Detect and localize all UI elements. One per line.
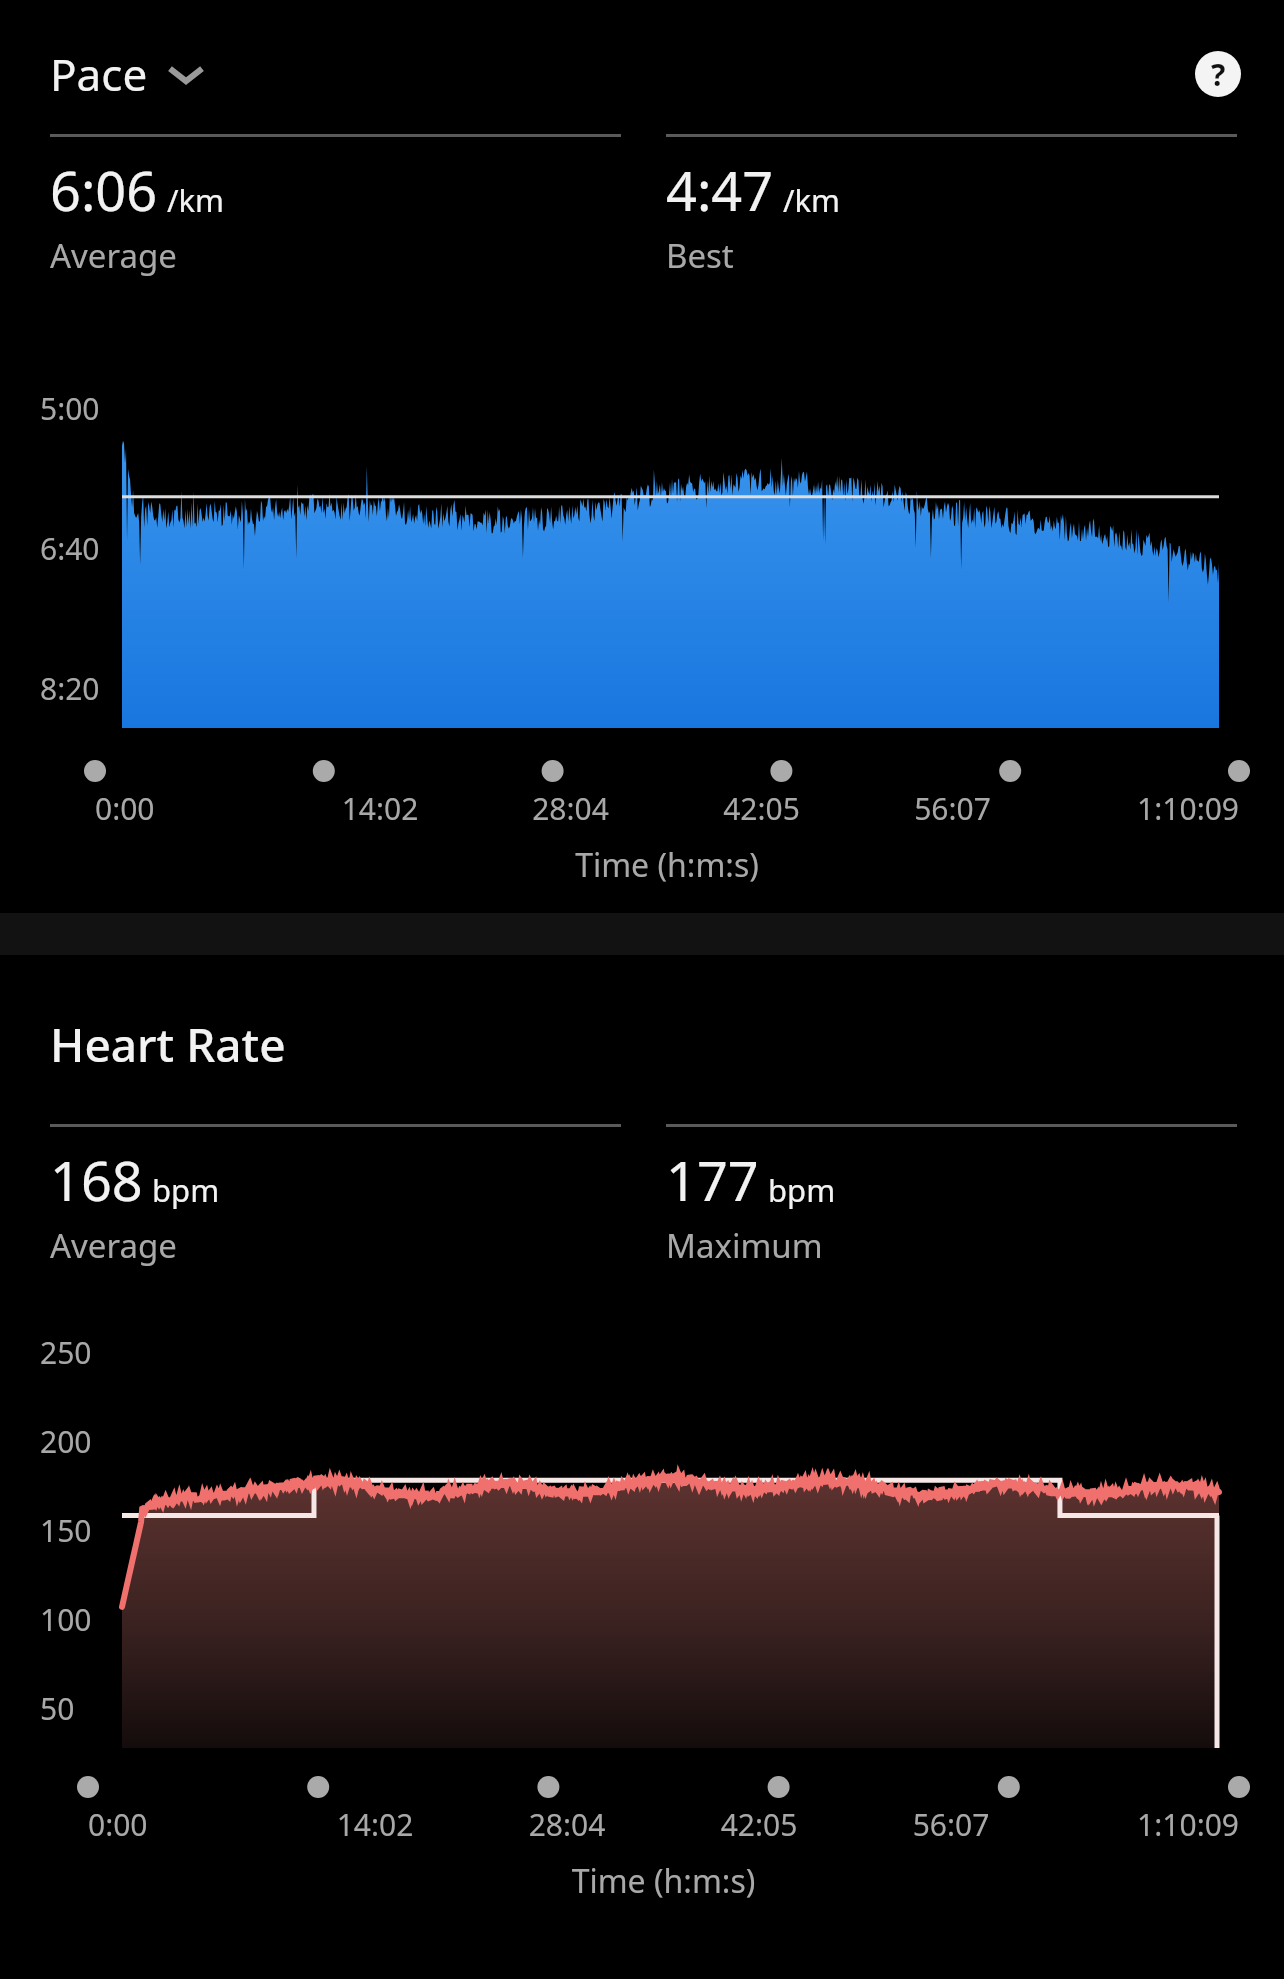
staticText: 250 bbox=[40, 1332, 92, 1373]
staticText: 42:05 bbox=[663, 1804, 855, 1845]
staticText: 42:05 bbox=[666, 788, 857, 829]
staticText: Average bbox=[50, 233, 177, 278]
staticText: 6:40 bbox=[40, 528, 100, 569]
staticText: Time (h:m:s) bbox=[95, 843, 1239, 887]
staticText: Heart Rate bbox=[50, 1013, 286, 1076]
staticText: 1:10:09 bbox=[1047, 1804, 1239, 1845]
staticText: Pace bbox=[50, 44, 148, 104]
staticText: 177 bbox=[666, 1143, 759, 1217]
staticText: 200 bbox=[40, 1421, 92, 1462]
staticText: 4:47 bbox=[666, 153, 774, 227]
staticText: bpm bbox=[152, 1169, 220, 1211]
staticText: Time (h:m:s) bbox=[88, 1859, 1239, 1903]
staticText: 28:04 bbox=[475, 788, 666, 829]
staticText: 14:02 bbox=[279, 1804, 471, 1845]
staticText: 56:07 bbox=[855, 1804, 1047, 1845]
button[interactable]: Help bbox=[1192, 48, 1244, 100]
staticText: 168 bbox=[50, 1143, 143, 1217]
staticText: Maximum bbox=[666, 1223, 823, 1268]
staticText: 28:04 bbox=[471, 1804, 663, 1845]
staticText: 50 bbox=[40, 1688, 75, 1729]
staticText: 8:20 bbox=[40, 668, 100, 709]
staticText: /km bbox=[167, 179, 225, 221]
staticText: 100 bbox=[40, 1599, 92, 1640]
button[interactable]: Pace bbox=[50, 44, 212, 104]
staticText: 56:07 bbox=[857, 788, 1048, 829]
staticText: /km bbox=[783, 179, 841, 221]
staticText: Best bbox=[666, 233, 734, 278]
staticText: ? bbox=[1211, 54, 1226, 95]
staticText: 5:00 bbox=[40, 388, 100, 429]
staticText: 0:00 bbox=[88, 1804, 279, 1845]
staticText: 14:02 bbox=[285, 788, 475, 829]
staticText: Average bbox=[50, 1223, 177, 1268]
staticText: 0:00 bbox=[95, 788, 285, 829]
staticText: 6:06 bbox=[50, 153, 158, 227]
staticText: bpm bbox=[768, 1169, 836, 1211]
staticText: 1:10:09 bbox=[1048, 788, 1239, 829]
staticText: 150 bbox=[40, 1510, 92, 1551]
